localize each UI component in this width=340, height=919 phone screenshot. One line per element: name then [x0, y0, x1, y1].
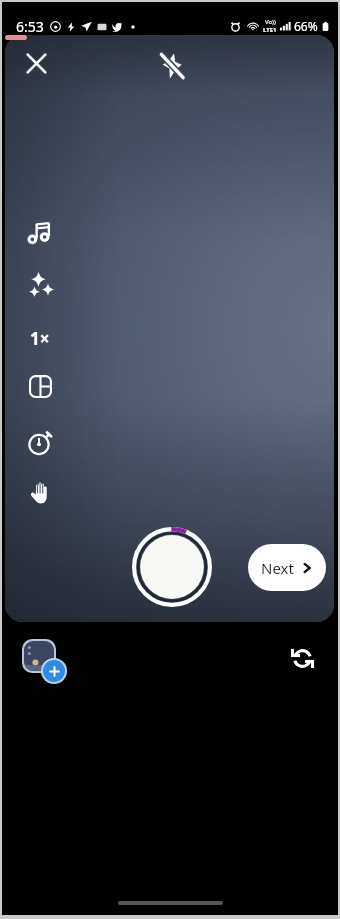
staticText: 6:53: [16, 17, 44, 36]
button[interactable]: Layout: [17, 363, 63, 409]
button[interactable]: Record: [126, 521, 218, 613]
button[interactable]: Speed: [17, 315, 63, 361]
staticText: 1×: [30, 327, 50, 350]
staticText: Vo)): [265, 18, 276, 26]
button[interactable]: Next: [248, 544, 326, 591]
button[interactable]: Gestures: [16, 469, 62, 515]
button[interactable]: Timer: [17, 419, 63, 465]
button[interactable]: Effects: [17, 261, 63, 307]
button[interactable]: Switch camera: [280, 636, 324, 680]
button[interactable]: Close: [16, 43, 56, 83]
staticText: Next: [261, 558, 294, 578]
button[interactable]: Gallery: [20, 637, 68, 685]
staticText: 66%: [294, 18, 318, 34]
button[interactable]: Flash off: [152, 46, 192, 86]
staticText: LTE1: [263, 26, 277, 34]
button[interactable]: Music: [17, 210, 63, 256]
